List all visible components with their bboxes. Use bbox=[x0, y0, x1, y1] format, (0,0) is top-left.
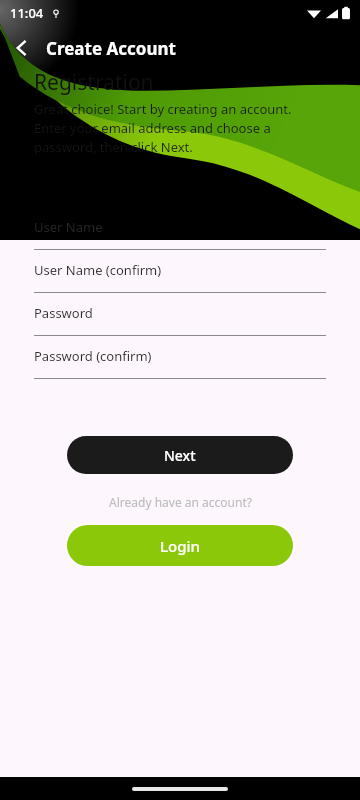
button[interactable]: User Name bbox=[34, 208, 326, 251]
staticText: User Name bbox=[34, 218, 103, 236]
button[interactable]: Back bbox=[0, 28, 44, 68]
staticText: Login bbox=[160, 536, 200, 556]
button[interactable]: Password (confirm) bbox=[34, 337, 326, 380]
button[interactable]: Login bbox=[67, 525, 293, 566]
button[interactable]: Already have an account? bbox=[101, 492, 260, 512]
staticText: Already have an account? bbox=[109, 494, 252, 510]
staticText: Create Account bbox=[46, 37, 176, 60]
staticText: Great choice! Start by creating an accou… bbox=[34, 100, 326, 156]
button[interactable]: Next bbox=[67, 436, 293, 474]
button[interactable]: Password bbox=[34, 294, 326, 337]
button[interactable]: User Name (confirm) bbox=[34, 251, 326, 294]
staticText: Password (confirm) bbox=[34, 347, 152, 365]
staticText: User Name (confirm) bbox=[34, 261, 162, 279]
staticText: Registration bbox=[34, 68, 154, 97]
staticText: Next bbox=[164, 446, 196, 465]
staticText: 11:04 bbox=[10, 4, 44, 22]
staticText: Password bbox=[34, 304, 93, 322]
